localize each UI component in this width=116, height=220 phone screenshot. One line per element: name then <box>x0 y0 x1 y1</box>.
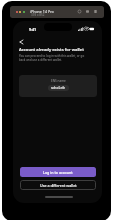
button[interactable]: Record <box>93 9 98 14</box>
button[interactable]: Back <box>16 36 27 47</box>
staticText: sohail.eth <box>51 86 66 90</box>
staticText: iPhone 14 Pro <box>30 9 54 14</box>
staticText: Account already exists for wallet <box>19 47 101 53</box>
staticText: You can proceed to log in with this wall… <box>19 54 85 62</box>
staticText: ENS name <box>51 79 66 83</box>
staticText: Use a different wallet <box>40 183 77 188</box>
button[interactable]: Log in to account <box>20 167 96 177</box>
button[interactable]: Rotate device <box>77 9 82 14</box>
staticText: 9:41 <box>29 27 37 32</box>
staticText: Log in to account <box>43 170 73 175</box>
button[interactable]: Use a different wallet <box>20 180 96 190</box>
staticText: 393 x 852 <box>31 13 45 17</box>
button[interactable]: Screenshot <box>85 9 90 14</box>
